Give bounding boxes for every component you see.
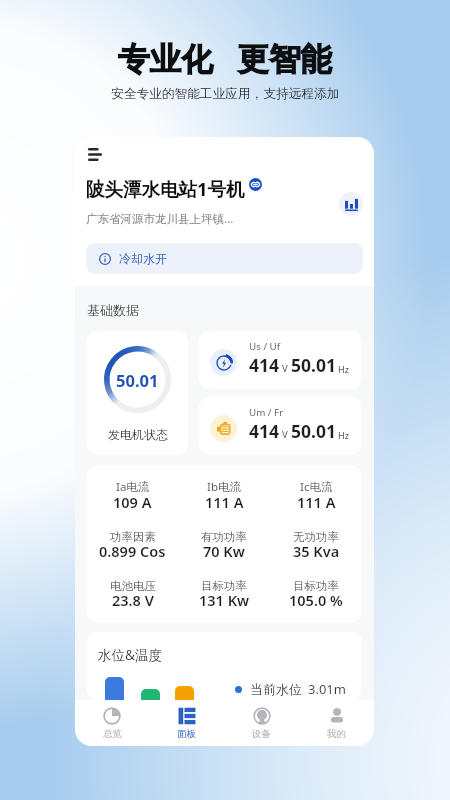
staticText: 陂头潭水电站1号机: [86, 176, 245, 201]
staticText: 电池电压: [110, 579, 156, 593]
button[interactable]: 面板: [149, 707, 224, 740]
staticText: 111 A: [205, 492, 244, 512]
staticText: 基础数据: [87, 302, 139, 318]
button[interactable]: 50.01: [87, 331, 188, 455]
staticText: V: [282, 362, 288, 375]
staticText: 0.899 Cos: [99, 541, 166, 561]
staticText: 设备: [252, 728, 271, 740]
staticText: Um / Fr: [249, 406, 284, 419]
staticText: 414: [249, 419, 280, 443]
staticText: Hz: [338, 363, 349, 375]
button[interactable]: 冷却水开: [86, 243, 363, 274]
button[interactable]: 我的: [299, 707, 374, 740]
staticText: Hz: [338, 429, 349, 441]
staticText: 冷却水开: [119, 251, 167, 266]
staticText: V: [282, 428, 288, 441]
staticText: 105.0 %: [289, 590, 343, 610]
staticText: 当前水位: [250, 681, 302, 697]
staticText: 50.01: [116, 369, 159, 391]
staticText: Ic电流: [300, 479, 333, 495]
staticText: 111 A: [297, 492, 336, 512]
button[interactable]: Statistics: [339, 192, 363, 216]
button[interactable]: 总览: [75, 707, 149, 740]
staticText: 我的: [327, 728, 346, 740]
staticText: 专业化 更智能: [118, 36, 333, 79]
staticText: 109 A: [113, 492, 152, 512]
staticText: 有功功率: [201, 530, 247, 544]
button[interactable]: Us / Uf: [199, 331, 362, 389]
button[interactable]: Ia电流: [87, 465, 362, 623]
staticText: 414: [249, 353, 280, 377]
staticText: Ia电流: [116, 479, 150, 495]
staticText: 发电机状态: [108, 427, 168, 442]
staticText: 131 Kw: [199, 590, 250, 610]
staticText: 35 Kva: [293, 541, 340, 561]
staticText: 23.8 V: [112, 590, 154, 610]
button[interactable]: Um / Fr: [199, 397, 362, 455]
staticText: 50.01: [291, 353, 336, 377]
staticText: 70 Kw: [203, 541, 245, 561]
staticText: Ib电流: [207, 479, 241, 495]
staticText: 总览: [103, 728, 122, 740]
staticText: 50.01: [291, 419, 336, 443]
button[interactable]: Link: [249, 178, 262, 191]
staticText: 面板: [177, 728, 196, 740]
button[interactable]: 设备: [224, 707, 299, 740]
staticText: Us / Uf: [249, 340, 281, 353]
staticText: 功率因素: [110, 530, 156, 544]
staticText: 广东省河源市龙川县上坪镇...: [86, 211, 234, 227]
staticText: 无功功率: [293, 530, 339, 544]
staticText: 水位&温度: [98, 646, 162, 664]
staticText: 目标功率: [201, 579, 247, 593]
staticText: 目标功率: [293, 579, 339, 593]
staticText: 3.01m: [308, 680, 346, 698]
staticText: 安全专业的智能工业应用，支持远程添加: [111, 86, 340, 102]
button[interactable]: Menu: [88, 144, 110, 166]
